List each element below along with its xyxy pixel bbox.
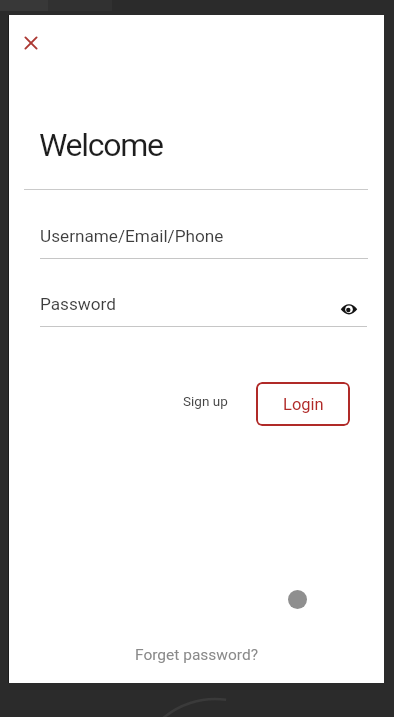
staticText: Forget password?: [135, 646, 258, 664]
button[interactable]: [17, 29, 45, 57]
staticText: Password: [40, 294, 116, 314]
button[interactable]: [340, 302, 358, 317]
staticText: Login: [283, 395, 324, 414]
button[interactable]: Login: [256, 382, 350, 426]
button[interactable]: Forget password?: [131, 642, 262, 668]
staticText: Sign up: [183, 393, 228, 409]
button[interactable]: Sign up: [175, 387, 235, 415]
staticText: Username/Email/Phone: [40, 226, 224, 246]
staticText: Welcome: [39, 126, 163, 164]
